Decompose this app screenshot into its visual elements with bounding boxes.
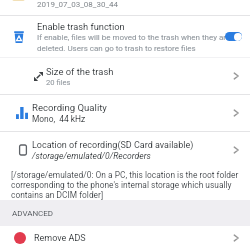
staticText: If enable, files will be moved to the tr… <box>37 33 237 53</box>
other: Open <box>230 107 242 119</box>
staticText: Remove ADS <box>34 233 222 244</box>
button[interactable]: Remove ADS <box>0 226 250 250</box>
other: Open <box>230 232 242 244</box>
staticText: Size of the trash <box>46 66 114 77</box>
button[interactable]: Enable trash function <box>0 16 250 57</box>
staticText: 20 files <box>46 78 71 87</box>
staticText: Mono, 44 kHz <box>32 114 86 124</box>
staticText: Location of recording(SD Card available) <box>32 140 194 151</box>
other: Open <box>230 70 242 82</box>
staticText: Recording Quality <box>32 102 107 113</box>
staticText: [/storage/emulated/0: On a PC, this loca… <box>11 170 244 200</box>
button[interactable]: Location of recording(SD Card available) <box>0 132 250 168</box>
button[interactable]: Recording Quality <box>0 95 250 131</box>
staticText: Enable trash function <box>37 21 125 32</box>
other: Open <box>230 144 242 156</box>
staticText: /storage/emulated/0/Recorders <box>32 151 151 161</box>
staticText: 2019_07_03_08_30_44 <box>37 0 118 9</box>
button[interactable]: 2019_07_03_08_30_44 <box>0 0 250 15</box>
button[interactable]: Size of the trash <box>0 58 250 94</box>
staticText: ADVANCED <box>12 209 54 218</box>
